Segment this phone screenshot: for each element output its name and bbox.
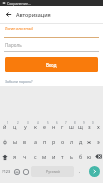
staticText: щ bbox=[78, 123, 83, 130]
staticText: б bbox=[79, 153, 83, 160]
staticText: Русский bbox=[46, 169, 60, 174]
staticText: с bbox=[34, 153, 37, 160]
button[interactable]: Русский bbox=[31, 166, 74, 177]
button[interactable]: Далее bbox=[89, 166, 100, 177]
staticText: х bbox=[97, 123, 100, 130]
button[interactable]: я bbox=[10, 149, 20, 164]
button[interactable]: д bbox=[76, 134, 85, 149]
staticText: . bbox=[79, 168, 81, 175]
button[interactable]: х bbox=[94, 119, 103, 134]
staticText: Вход bbox=[46, 62, 57, 68]
button[interactable]: б bbox=[76, 149, 85, 164]
staticText: 8 bbox=[74, 121, 76, 125]
staticText: з bbox=[88, 123, 91, 130]
button[interactable]: Вход bbox=[5, 57, 98, 72]
staticText: Логин или email bbox=[5, 26, 33, 31]
staticText: у bbox=[24, 123, 27, 130]
button[interactable]: н bbox=[49, 119, 58, 134]
button[interactable]: ю bbox=[85, 149, 94, 164]
button[interactable]: ч bbox=[20, 149, 30, 164]
button[interactable]: г bbox=[58, 119, 67, 134]
button[interactable]: р bbox=[49, 134, 58, 149]
button[interactable]: з bbox=[85, 119, 94, 134]
staticText: е bbox=[43, 123, 46, 130]
staticText: ц bbox=[13, 123, 17, 130]
button[interactable]: ш bbox=[67, 119, 76, 134]
staticText: ы bbox=[13, 138, 18, 145]
staticText: ж bbox=[87, 138, 92, 145]
staticText: Пароль bbox=[5, 42, 22, 48]
button[interactable]: в bbox=[20, 134, 30, 149]
button[interactable]: ?123 bbox=[0, 164, 12, 179]
staticText: Забыли пароль? bbox=[5, 79, 33, 84]
staticText: 9 bbox=[83, 121, 85, 125]
staticText: ?123 bbox=[2, 169, 11, 174]
staticText: ш bbox=[69, 123, 74, 130]
button[interactable]: с bbox=[30, 149, 40, 164]
staticText: ч bbox=[23, 153, 27, 160]
staticText: Авторизация bbox=[16, 11, 51, 18]
button[interactable]: к bbox=[30, 119, 40, 134]
staticText: 1 bbox=[7, 121, 9, 125]
button[interactable]: ц bbox=[10, 119, 20, 134]
button[interactable]: т bbox=[58, 149, 67, 164]
staticText: в bbox=[23, 138, 27, 145]
staticText: д bbox=[79, 138, 83, 145]
button[interactable]: у bbox=[20, 119, 30, 134]
staticText: Сохранение… bbox=[7, 1, 31, 6]
button[interactable]: м bbox=[40, 149, 49, 164]
staticText: л bbox=[70, 138, 74, 145]
button[interactable]: Backspace bbox=[94, 149, 103, 164]
staticText: п bbox=[43, 138, 47, 145]
button[interactable]: й bbox=[0, 119, 10, 134]
staticText: р bbox=[52, 138, 56, 145]
staticText: 7 bbox=[65, 121, 67, 125]
staticText: э bbox=[97, 138, 100, 145]
button[interactable]: щ bbox=[76, 119, 85, 134]
staticText: н bbox=[52, 123, 56, 130]
button[interactable]: л bbox=[67, 134, 76, 149]
button[interactable]: . bbox=[75, 164, 85, 179]
staticText: ю bbox=[87, 153, 92, 160]
staticText: 0 bbox=[92, 121, 94, 125]
button[interactable]: Настройки bbox=[21, 164, 30, 179]
button[interactable]: ь bbox=[67, 149, 76, 164]
staticText: ь bbox=[70, 153, 73, 160]
button[interactable]: Shift bbox=[0, 149, 10, 164]
staticText: я bbox=[13, 153, 17, 160]
staticText: 6 bbox=[56, 121, 58, 125]
staticText: т bbox=[61, 153, 64, 160]
button[interactable]: ф bbox=[0, 134, 10, 149]
staticText: и bbox=[52, 153, 56, 160]
button[interactable]: Забыли пароль? bbox=[4, 78, 34, 85]
button[interactable]: Эмодзи bbox=[12, 164, 21, 179]
staticText: 4 bbox=[37, 121, 39, 125]
button[interactable]: и bbox=[49, 149, 58, 164]
button[interactable]: о bbox=[58, 134, 67, 149]
staticText: а bbox=[34, 138, 37, 145]
button[interactable]: а bbox=[30, 134, 40, 149]
staticText: к bbox=[34, 123, 37, 130]
staticText: г bbox=[61, 123, 64, 130]
staticText: о bbox=[61, 138, 65, 145]
staticText: 5 bbox=[47, 121, 49, 125]
button[interactable]: п bbox=[40, 134, 49, 149]
staticText: 2 bbox=[17, 121, 19, 125]
button[interactable]: э bbox=[94, 134, 103, 149]
staticText: ф bbox=[3, 138, 7, 145]
staticText: й bbox=[3, 123, 7, 130]
button[interactable]: е bbox=[40, 119, 49, 134]
button[interactable]: Назад bbox=[0, 6, 16, 23]
staticText: 3 bbox=[27, 121, 29, 125]
button[interactable]: ы bbox=[10, 134, 20, 149]
staticText: м bbox=[42, 153, 47, 160]
button[interactable]: ж bbox=[85, 134, 94, 149]
